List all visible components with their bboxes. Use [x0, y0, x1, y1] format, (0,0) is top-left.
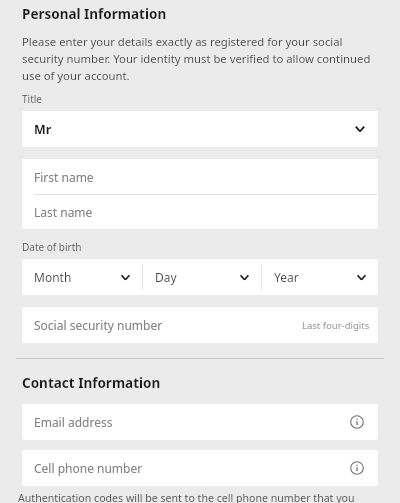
button[interactable]: Month	[22, 259, 142, 295]
staticText: Title	[22, 92, 42, 106]
staticText: Email address	[34, 414, 347, 430]
staticText: Year	[274, 269, 355, 285]
button[interactable]: Social security number	[22, 307, 378, 343]
staticText: Day	[155, 269, 238, 285]
staticText: Social security number	[34, 317, 302, 333]
staticText: Contact Information	[22, 374, 161, 392]
button[interactable]: Year	[262, 259, 378, 295]
button[interactable]: First name	[22, 159, 378, 194]
staticText: Month	[34, 269, 119, 285]
button[interactable]: Email address information	[347, 412, 367, 432]
button[interactable]: Cell phone number	[22, 450, 378, 486]
button[interactable]: Mr	[22, 111, 378, 147]
button[interactable]: Cell phone number information	[347, 458, 367, 478]
staticText: Date of birth	[22, 240, 82, 254]
staticText: Last name	[34, 204, 93, 220]
staticText: Personal Information	[22, 5, 167, 23]
staticText: Authentication codes will be sent to the…	[18, 491, 384, 503]
staticText: Last four-digits	[302, 319, 370, 332]
staticText: First name	[34, 169, 94, 185]
button[interactable]: Last name	[22, 195, 378, 229]
staticText: Please enter your details exactly as reg…	[22, 34, 382, 84]
button[interactable]: Email address	[22, 404, 378, 440]
button[interactable]: Day	[143, 259, 261, 295]
staticText: Mr	[34, 121, 353, 138]
staticText: Cell phone number	[34, 460, 347, 476]
